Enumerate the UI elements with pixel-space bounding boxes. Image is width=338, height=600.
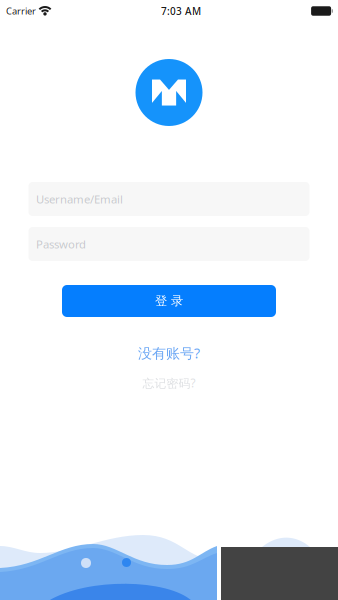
button[interactable]: 忘记密码? [104,375,234,391]
button[interactable]: 登 录 [62,285,276,317]
staticText: 没有账号? [138,343,200,363]
staticText: 7:03 AM [161,4,201,18]
staticText: 登 录 [155,293,183,309]
staticText: Username/Email [36,191,123,207]
button[interactable]: 没有账号? [104,343,234,363]
staticText: 忘记密码? [142,375,195,391]
staticText: Carrier [6,5,36,17]
staticText: Password [36,236,86,252]
